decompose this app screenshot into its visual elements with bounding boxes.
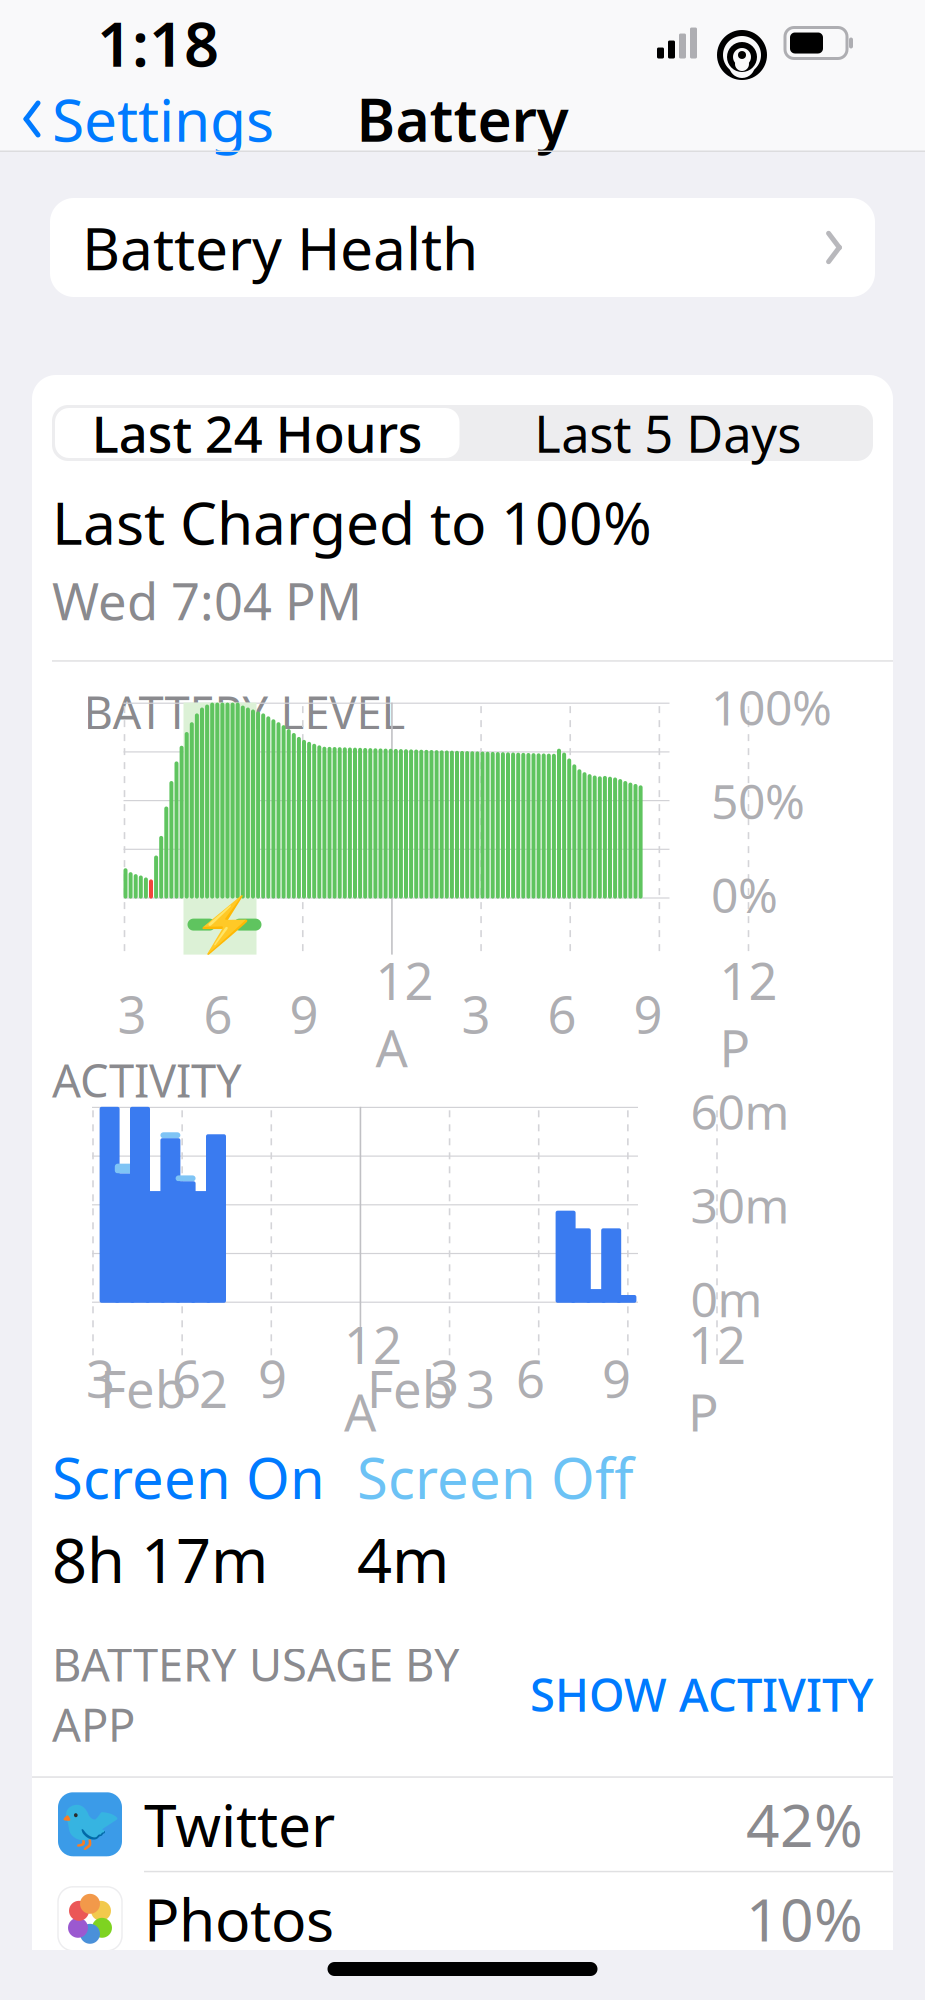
button[interactable]: 🐦	[32, 1778, 893, 1871]
staticText: 6	[547, 980, 576, 1047]
staticText: 🐦	[58, 1795, 121, 1853]
staticText: Wed 7:04 PM	[52, 567, 362, 634]
button[interactable]: Photos	[32, 1872, 893, 1965]
staticText: 42%	[746, 1785, 863, 1863]
staticText: 3	[86, 1344, 115, 1412]
staticText: Photos	[144, 1880, 334, 1958]
staticText: Last 24 Hours	[92, 399, 423, 467]
staticText: Screen Off	[357, 1440, 634, 1514]
staticText: 9	[289, 980, 318, 1047]
button[interactable]: SHOW ACTIVITY	[530, 1664, 873, 1724]
staticText: 6	[172, 1344, 201, 1412]
staticText: Feb 2	[100, 1355, 228, 1422]
staticText: ⚡	[191, 894, 257, 955]
button[interactable]: Settings	[0, 70, 274, 168]
button[interactable]: Battery Health	[50, 198, 875, 297]
staticText: 9	[602, 1344, 631, 1412]
staticText: Screen On	[52, 1440, 325, 1514]
staticText: Battery	[356, 80, 568, 158]
staticText: 10%	[746, 1880, 863, 1958]
staticText: 6	[516, 1344, 545, 1412]
staticText: Settings	[52, 80, 274, 158]
staticText: 3	[117, 980, 146, 1047]
staticText: 3	[430, 1344, 459, 1412]
staticText: 100%	[711, 675, 832, 739]
staticText: 9	[633, 980, 662, 1047]
staticText: 4m	[357, 1518, 449, 1600]
staticText: Last 5 Days	[534, 399, 801, 467]
staticText: 12 P	[719, 947, 777, 1081]
staticText: BATTERY LEVEL	[83, 682, 405, 742]
staticText: Feb 3	[367, 1355, 495, 1422]
staticText: Last Charged to 100%	[52, 483, 652, 561]
staticText: ACTIVITY	[52, 1050, 242, 1110]
staticText: 6	[203, 980, 232, 1047]
staticText: 30m	[690, 1173, 789, 1237]
staticText: 60m	[690, 1079, 789, 1143]
staticText: 12 P	[688, 1311, 746, 1445]
staticText: 0%	[711, 862, 778, 926]
staticText: YouTube	[144, 1945, 380, 2000]
staticText: 12 A	[375, 947, 433, 1081]
staticText: 9	[258, 1344, 287, 1412]
staticText: 1:18	[97, 2, 219, 84]
button[interactable]: Last 24 Hours	[52, 405, 462, 461]
staticText: 3	[461, 980, 490, 1047]
staticText: SHOW ACTIVITY	[530, 1664, 873, 1724]
staticText: 0m	[690, 1267, 762, 1330]
staticText: 8h 17m	[52, 1518, 268, 1600]
staticText: BATTERY USAGE BY APP	[52, 1634, 460, 1754]
staticText: 12 A	[344, 1311, 402, 1445]
staticText: Twitter	[144, 1785, 335, 1863]
button[interactable]: ▶	[32, 1967, 893, 2000]
staticText: Battery Health	[82, 208, 478, 286]
button[interactable]: Last 5 Days	[462, 405, 873, 461]
staticText: 50%	[711, 769, 805, 832]
